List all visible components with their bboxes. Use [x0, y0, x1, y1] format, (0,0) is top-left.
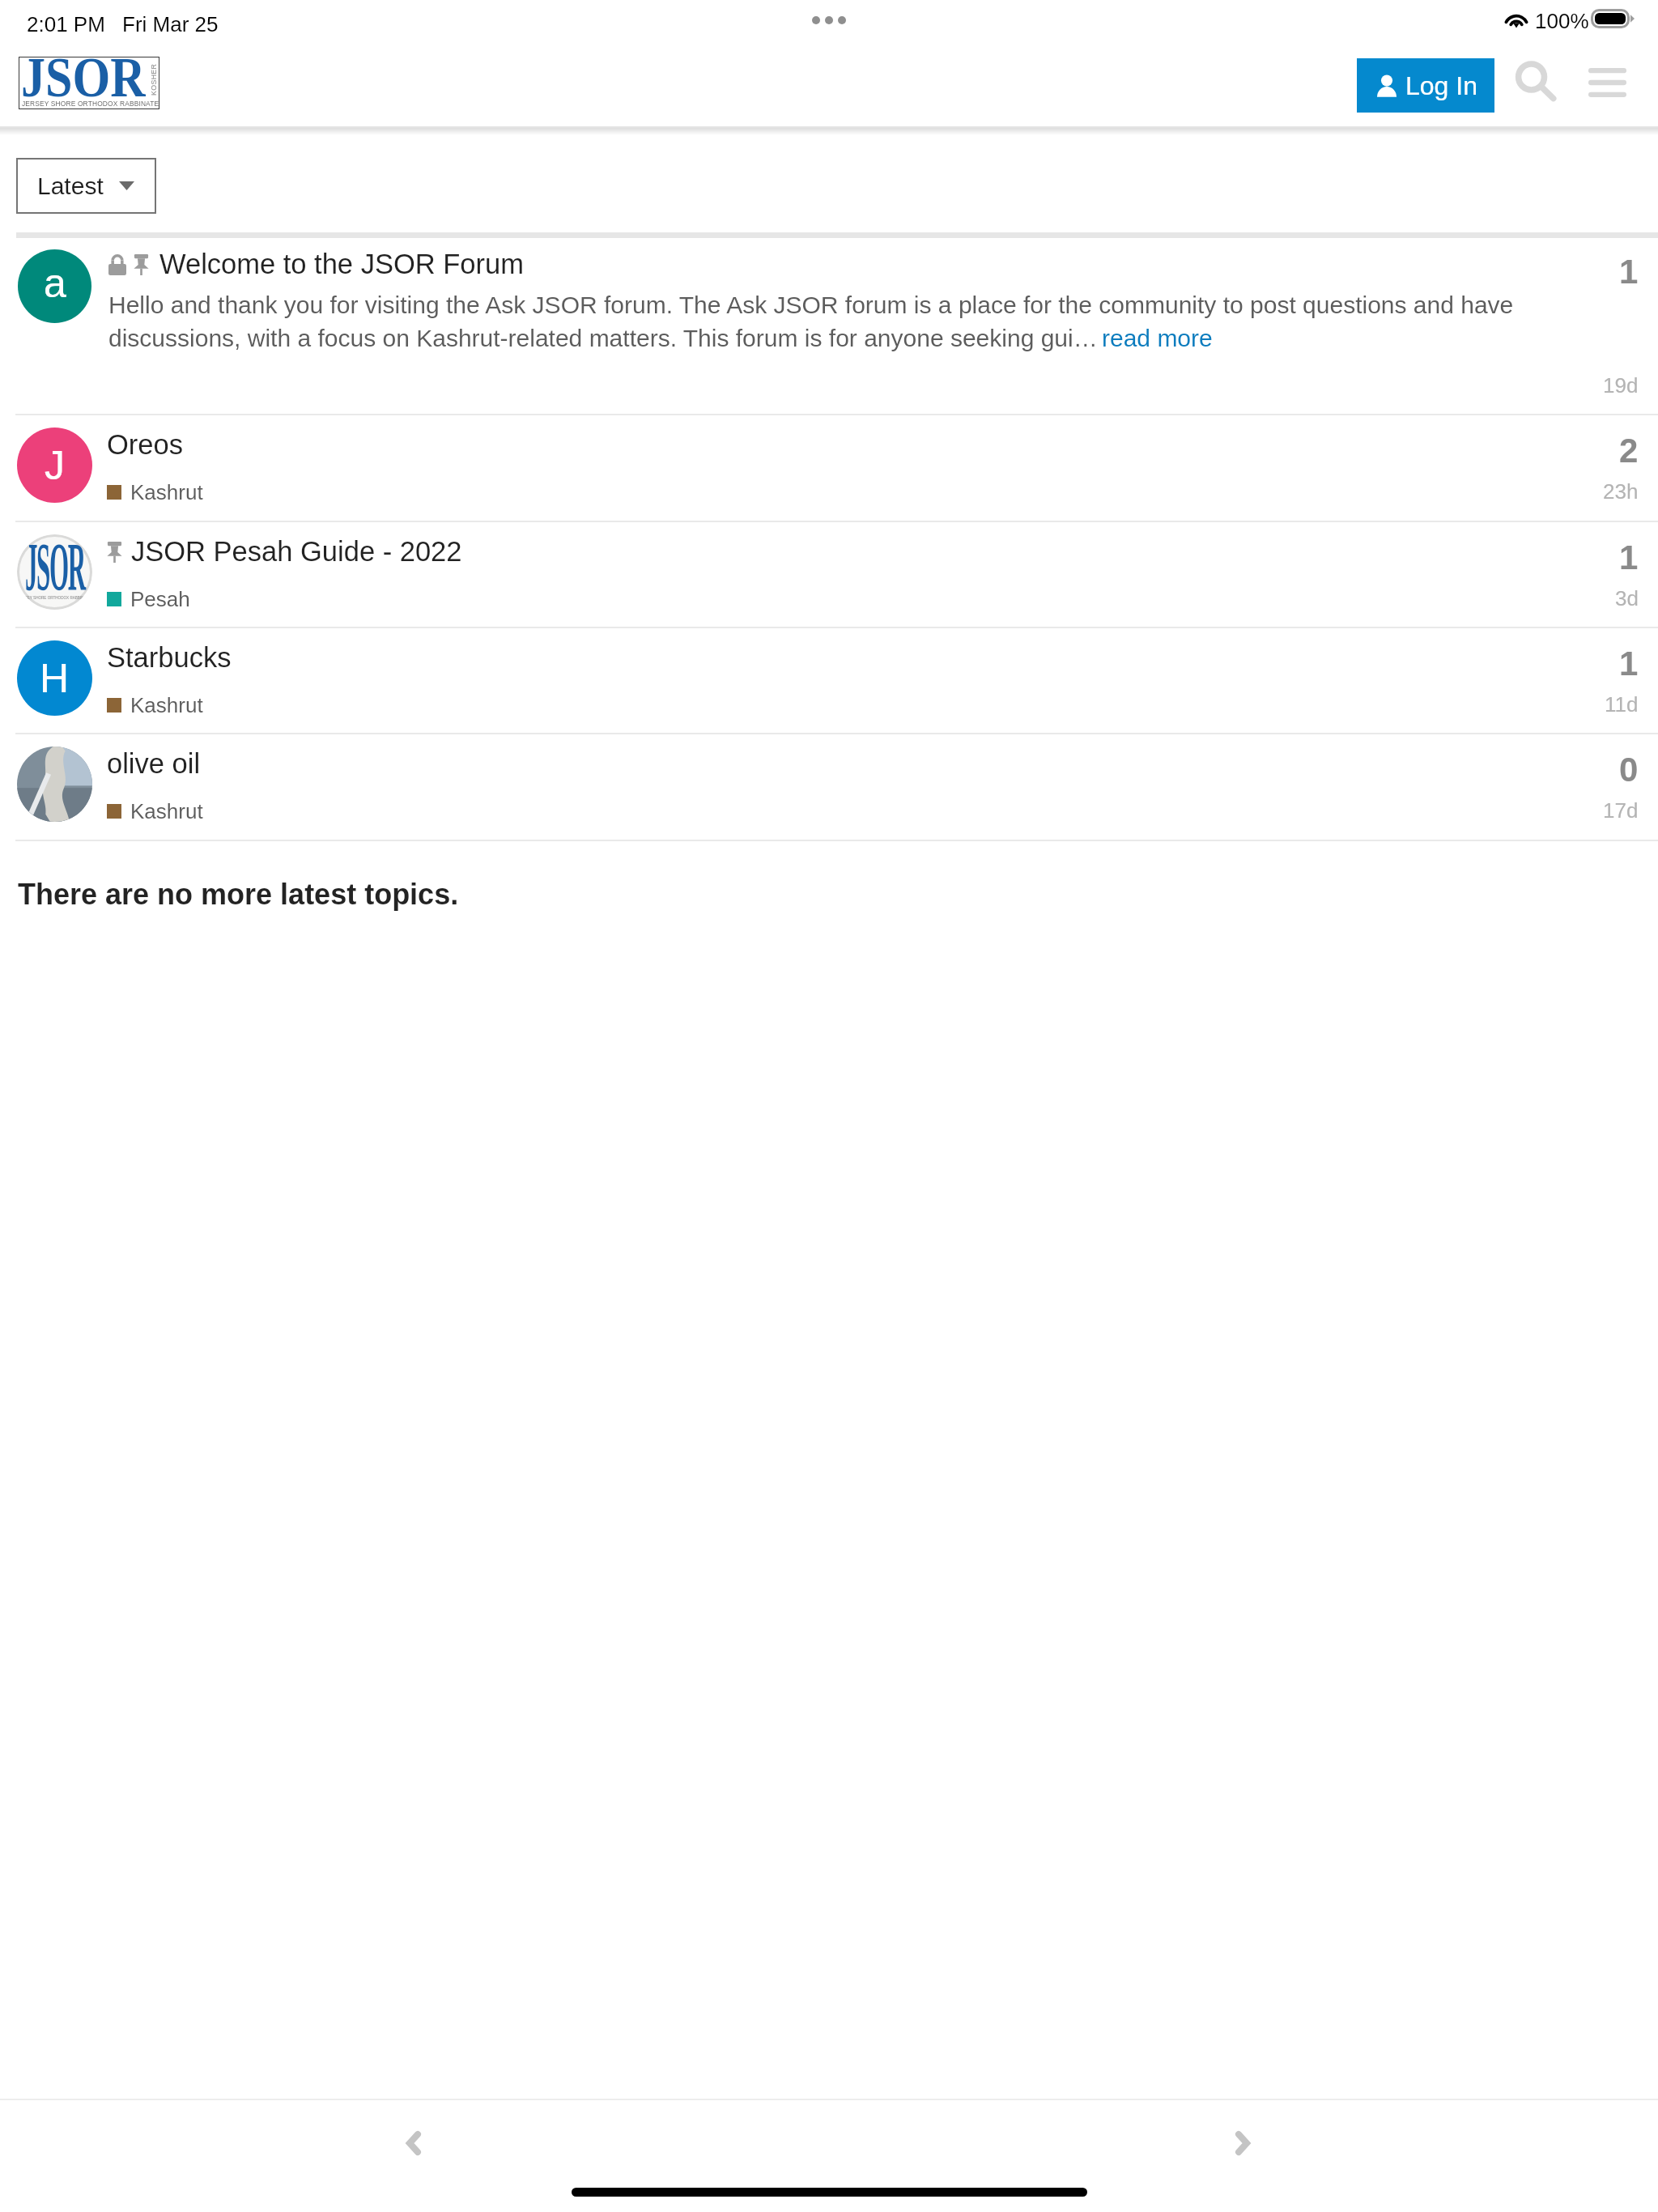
staticText: JERSEY SHORE ORTHODOX RABBINATE — [18, 596, 91, 600]
staticText: Kashrut — [130, 480, 203, 504]
staticText: 100% — [1535, 9, 1589, 32]
button[interactable]: H — [0, 627, 1658, 734]
staticText: 2 — [1619, 432, 1639, 470]
staticText: JSOR Pesah Guide - 2022 — [131, 536, 462, 568]
button[interactable]: J — [0, 415, 1658, 521]
staticText: 19d — [1603, 373, 1639, 397]
button[interactable]: Back — [376, 2106, 451, 2180]
staticText: discussions, with a focus on Kashrut-rel… — [108, 325, 1098, 352]
staticText: Oreos — [107, 429, 183, 461]
staticText: JSOR — [21, 46, 146, 105]
button[interactable]: Latest — [16, 158, 156, 214]
staticText: Kashrut — [130, 693, 203, 717]
staticText: 0 — [1619, 751, 1639, 789]
button[interactable]: Forward — [1205, 2106, 1280, 2180]
staticText: KOSHER — [150, 63, 158, 96]
staticText: Latest — [37, 172, 104, 200]
staticText: Pesah — [130, 587, 190, 610]
staticText: Fri Mar 25 — [122, 12, 219, 36]
staticText: 1 — [1619, 644, 1639, 683]
button[interactable]: JSOR — [19, 57, 159, 109]
staticText: 3d — [1615, 586, 1639, 610]
staticText: There are no more latest topics. — [18, 878, 459, 910]
staticText: 1 — [1619, 538, 1639, 576]
staticText: J — [45, 443, 65, 488]
button[interactable]: Log In — [1357, 58, 1494, 113]
button[interactable]: olive oil — [0, 734, 1658, 840]
staticText: JERSEY SHORE ORTHODOX RABBINATE — [22, 100, 159, 107]
staticText: 2:01 PM — [27, 12, 105, 36]
staticText: 17d — [1603, 798, 1639, 822]
button[interactable]: JSOR — [0, 521, 1658, 627]
staticText: Starbucks — [107, 642, 232, 674]
staticText: a — [44, 261, 66, 306]
staticText: Hello and thank you for visiting the Ask… — [108, 291, 1514, 319]
button[interactable]: Search — [1511, 57, 1562, 108]
button[interactable]: a — [0, 238, 1658, 414]
staticText: 23h — [1603, 479, 1639, 503]
staticText: 1 — [1619, 253, 1639, 291]
staticText: Log In — [1405, 71, 1477, 100]
staticText: Kashrut — [130, 799, 203, 823]
staticText: H — [40, 656, 70, 701]
staticText: Welcome to the JSOR Forum — [159, 249, 524, 280]
button[interactable]: Menu — [1581, 57, 1633, 108]
staticText: JSOR — [25, 534, 85, 606]
staticText: olive oil — [107, 748, 201, 780]
staticText: 11d — [1605, 692, 1639, 716]
button[interactable]: read more — [1102, 325, 1213, 352]
